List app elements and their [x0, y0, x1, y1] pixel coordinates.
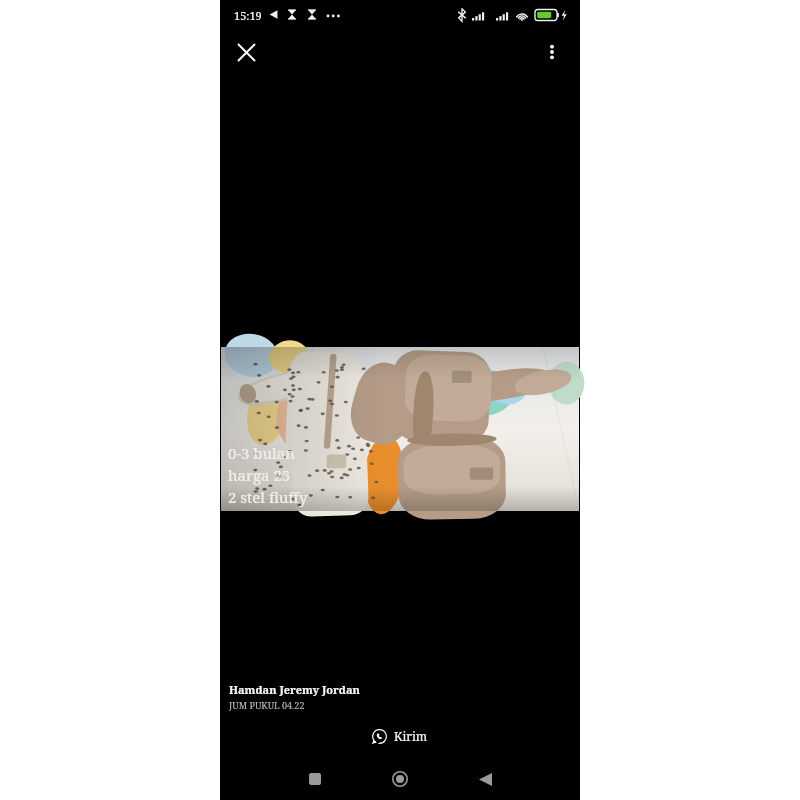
staticText: 15:19 — [234, 8, 262, 23]
staticText: Hamdan Jeremy Jordan — [229, 682, 360, 697]
button[interactable]: More options — [534, 34, 570, 70]
staticText: harga 25 — [228, 465, 291, 485]
staticText: 0-3 bulan — [228, 443, 295, 463]
staticText: JUM PUKUL 04.22 — [229, 699, 305, 711]
staticText: 2 stel fluffy — [228, 487, 308, 507]
button[interactable]: Close — [228, 34, 264, 70]
button[interactable]: Kirim — [358, 724, 442, 748]
button[interactable]: Back — [468, 762, 502, 796]
button[interactable]: Home — [383, 762, 417, 796]
button[interactable]: Recent apps — [298, 762, 332, 796]
staticText: Kirim — [394, 728, 428, 744]
